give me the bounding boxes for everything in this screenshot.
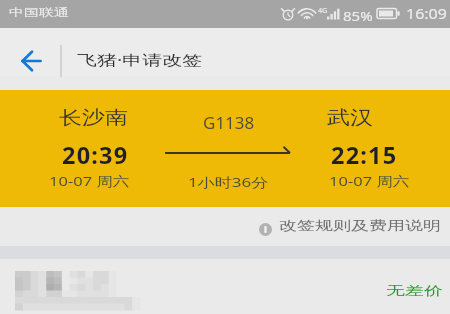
button[interactable]: 无差价: [0, 259, 450, 314]
staticText: 飞猪·申请改签: [77, 50, 203, 69]
staticText: 85%: [343, 7, 373, 24]
staticText: 10-07 周六: [49, 172, 130, 190]
staticText: 22:15: [331, 140, 398, 170]
staticText: 4G: [318, 6, 328, 16]
staticText: G1138: [203, 112, 255, 134]
staticText: 20:39: [62, 140, 129, 170]
staticText: 10-07 周六: [329, 172, 410, 190]
staticText: 长沙南: [59, 106, 128, 129]
staticText: 无差价: [386, 283, 443, 299]
staticText: 16:09: [406, 5, 447, 24]
staticText: 改签规则及费用说明: [279, 218, 441, 235]
staticText: 武汉: [327, 106, 373, 130]
staticText: 中国联通: [9, 6, 69, 19]
button[interactable]: 改签规则及费用说明: [0, 210, 450, 249]
staticText: 1小时36分: [188, 173, 269, 190]
button[interactable]: Back: [7, 28, 55, 76]
